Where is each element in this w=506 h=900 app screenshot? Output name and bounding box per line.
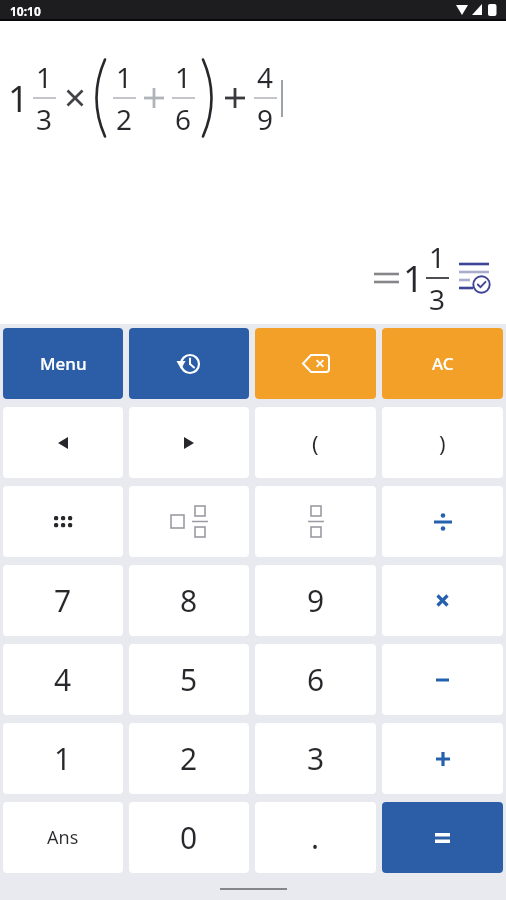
staticText: 1 bbox=[8, 74, 29, 123]
button[interactable]: 9 bbox=[255, 565, 376, 636]
button[interactable]: 2 bbox=[129, 723, 249, 794]
button[interactable] bbox=[3, 407, 123, 478]
button[interactable] bbox=[382, 723, 503, 794]
button[interactable]: 1 bbox=[3, 723, 123, 794]
button[interactable]: 7 bbox=[3, 565, 123, 636]
button[interactable]: ( bbox=[255, 407, 376, 478]
button[interactable] bbox=[255, 328, 376, 399]
button[interactable] bbox=[129, 407, 249, 478]
button[interactable] bbox=[255, 486, 376, 557]
staticText: Menu bbox=[40, 352, 87, 375]
staticText: ) bbox=[439, 428, 446, 458]
button[interactable]: 6 bbox=[255, 644, 376, 715]
button[interactable] bbox=[382, 486, 503, 557]
staticText: 0 bbox=[180, 817, 198, 858]
button[interactable]: Ans bbox=[3, 802, 123, 873]
button[interactable] bbox=[129, 486, 249, 557]
staticText: 5 bbox=[180, 659, 198, 700]
button[interactable]: 3 bbox=[255, 723, 376, 794]
staticText: 1 bbox=[429, 238, 446, 276]
staticText: 2 bbox=[180, 738, 198, 779]
staticText: 3 bbox=[36, 100, 53, 138]
staticText: 1 bbox=[36, 58, 53, 96]
staticText: 1 bbox=[54, 738, 72, 779]
staticText: 1 bbox=[175, 58, 192, 96]
button[interactable]: . bbox=[255, 802, 376, 873]
staticText: 6 bbox=[307, 659, 325, 700]
button[interactable] bbox=[129, 328, 249, 399]
button[interactable]: 8 bbox=[129, 565, 249, 636]
staticText: 4 bbox=[54, 659, 72, 700]
staticText: 8 bbox=[180, 580, 198, 621]
button[interactable] bbox=[382, 565, 503, 636]
button[interactable] bbox=[457, 261, 491, 295]
staticText: AC bbox=[432, 352, 454, 375]
button[interactable] bbox=[3, 486, 123, 557]
staticText: 10:10 bbox=[10, 3, 41, 19]
button[interactable]: 0 bbox=[129, 802, 249, 873]
staticText: . bbox=[311, 817, 320, 858]
staticText: 2 bbox=[116, 100, 133, 138]
staticText: 4 bbox=[257, 58, 274, 96]
staticText: 3 bbox=[307, 738, 325, 779]
button[interactable]: AC bbox=[382, 328, 503, 399]
button[interactable]: Menu bbox=[3, 328, 123, 399]
staticText: 7 bbox=[54, 580, 72, 621]
staticText: 1 bbox=[403, 254, 424, 303]
staticText: 3 bbox=[429, 280, 446, 318]
staticText: 9 bbox=[307, 580, 325, 621]
staticText: ( bbox=[312, 428, 319, 458]
button[interactable]: 5 bbox=[129, 644, 249, 715]
button[interactable]: 4 bbox=[3, 644, 123, 715]
button[interactable] bbox=[382, 644, 503, 715]
button[interactable] bbox=[382, 802, 503, 873]
staticText: Ans bbox=[47, 825, 79, 850]
staticText: 1 bbox=[116, 58, 133, 96]
button[interactable]: ) bbox=[382, 407, 503, 478]
staticText: 9 bbox=[257, 100, 274, 138]
staticText: 6 bbox=[175, 100, 192, 138]
